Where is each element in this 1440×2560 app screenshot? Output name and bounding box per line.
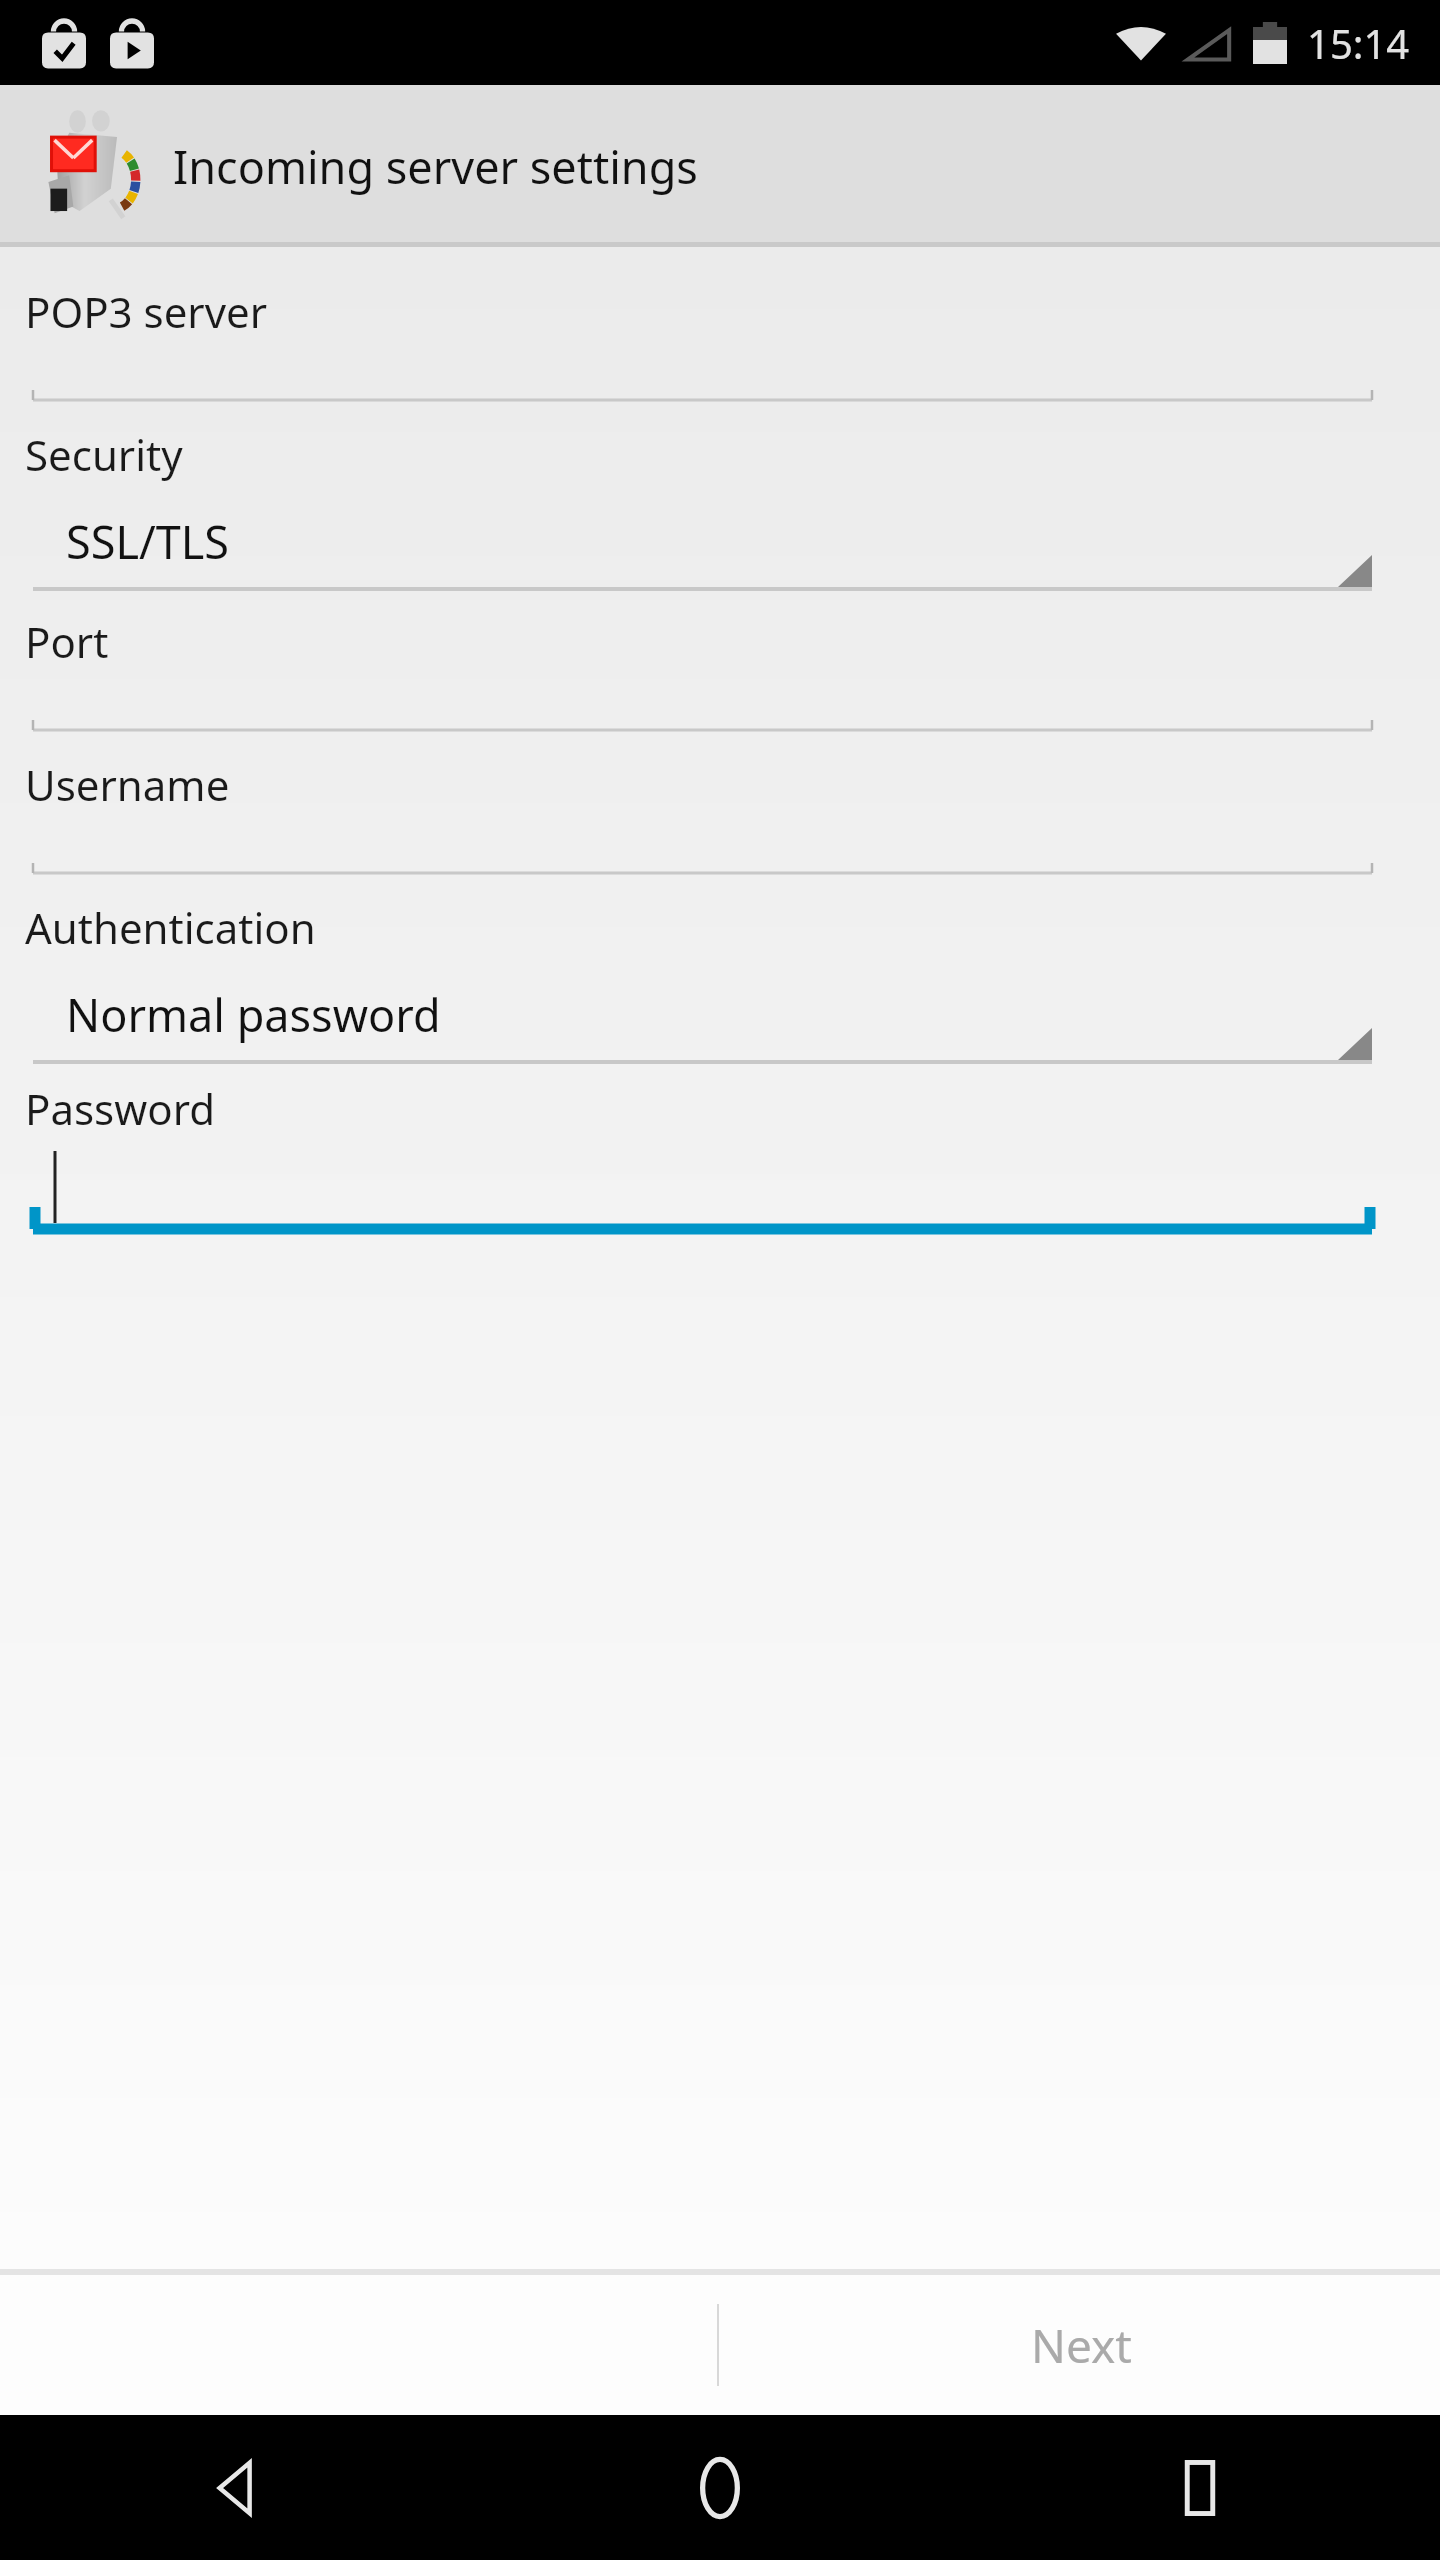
button[interactable]: Normal password (0, 956, 1440, 1068)
staticText: Password (25, 1080, 215, 1137)
button[interactable]: SSL/TLS (0, 483, 1440, 595)
button[interactable]: Home (480, 2415, 960, 2560)
button[interactable] (0, 1137, 1440, 1247)
button[interactable] (0, 340, 1440, 408)
staticText: Port (25, 613, 109, 670)
staticText: POP3 server (25, 283, 268, 340)
staticText: Username (25, 756, 230, 813)
staticText: Normal password (66, 984, 441, 1045)
staticText: Security (25, 426, 183, 483)
staticText: Authentication (25, 899, 316, 956)
button[interactable] (0, 670, 1440, 738)
button[interactable]: Next (722, 2275, 1440, 2415)
button[interactable] (0, 813, 1440, 881)
button[interactable]: Back (0, 2415, 480, 2560)
staticText: Incoming server settings (173, 136, 698, 197)
staticText: 15:14 (1307, 16, 1410, 70)
staticText: SSL/TLS (66, 511, 230, 572)
staticText: Next (1031, 2314, 1132, 2377)
button[interactable]: Recent apps (960, 2415, 1440, 2560)
